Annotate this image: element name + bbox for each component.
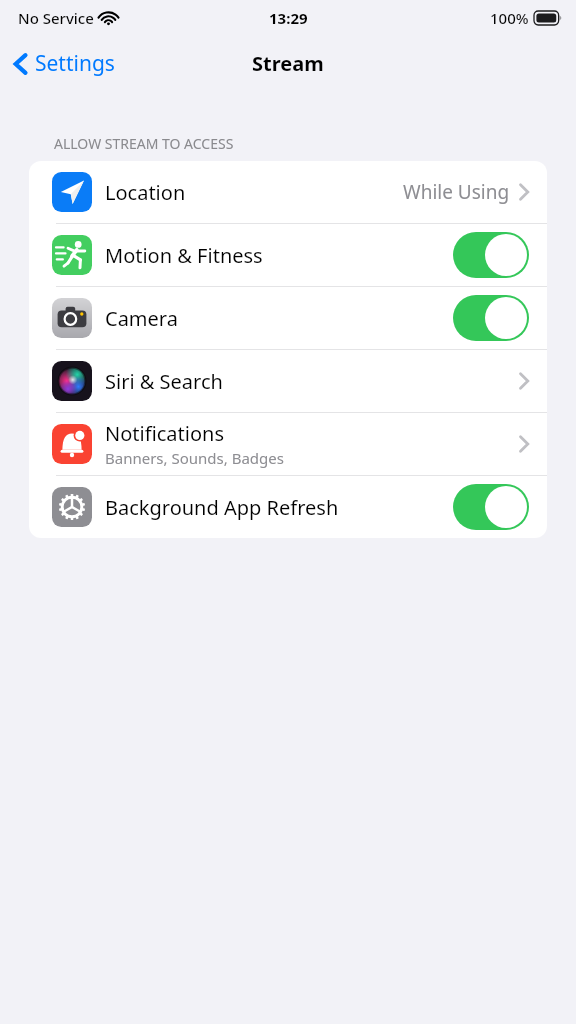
button[interactable]: Camera (29, 287, 547, 349)
staticText: Motion & Fitness (105, 242, 263, 269)
staticText: Location (105, 179, 186, 206)
staticText: Banners, Sounds, Badges (105, 448, 284, 468)
button[interactable]: Location (29, 161, 547, 223)
staticText: Settings (35, 49, 115, 78)
staticText: Camera (105, 305, 178, 332)
button[interactable]: Toggle on (453, 484, 529, 530)
button[interactable]: Settings (0, 43, 125, 84)
staticText: Background App Refresh (105, 494, 339, 521)
button[interactable]: Background App Refresh (29, 476, 547, 538)
staticText: Notifications (105, 420, 224, 447)
staticText: ALLOW STREAM TO ACCESS (54, 134, 234, 153)
staticText: While Using (403, 179, 510, 205)
button[interactable]: Toggle on (453, 232, 529, 278)
staticText: 13:29 (269, 8, 308, 28)
staticText: No Service (18, 8, 94, 28)
button[interactable]: Siri & Search (29, 350, 547, 412)
staticText: Siri & Search (105, 368, 223, 395)
staticText: Stream (252, 50, 324, 77)
button[interactable]: Motion & Fitness (29, 224, 547, 286)
staticText: 100% (490, 8, 529, 28)
button[interactable]: Toggle on (453, 295, 529, 341)
button[interactable]: Notifications (29, 413, 547, 475)
